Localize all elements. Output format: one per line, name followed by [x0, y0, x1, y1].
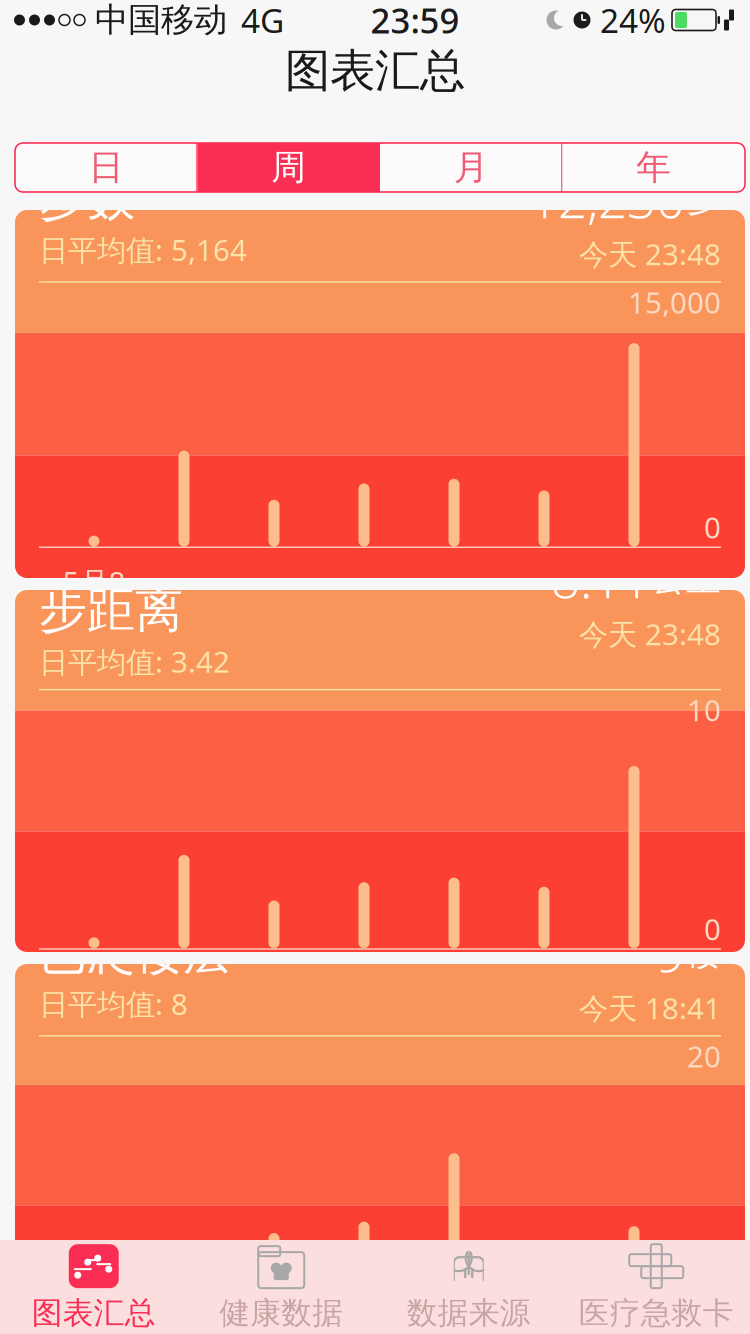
staticText: 12,230	[529, 165, 685, 232]
staticText: 今天 23:48	[579, 234, 721, 273]
staticText: 步行 + 跑步距离	[39, 517, 234, 640]
button[interactable]: 健康数据	[187, 1240, 375, 1334]
staticText: 周	[271, 146, 306, 189]
staticText: 9	[656, 919, 685, 986]
staticText: 月	[454, 146, 489, 189]
staticText: 日平均值: 3.42	[39, 642, 230, 681]
staticText: 23:59	[370, 0, 459, 43]
staticText: 0	[704, 909, 721, 948]
button[interactable]: 医疗急救卡	[562, 1240, 750, 1334]
staticText: 9	[175, 580, 192, 619]
staticText: 13	[527, 580, 561, 619]
staticText: 14	[617, 580, 651, 619]
staticText: 8.11	[551, 545, 650, 612]
staticText: 24%	[600, 0, 666, 42]
staticText: 步数	[39, 169, 135, 228]
staticText: 0	[704, 508, 721, 547]
staticText: 医疗急救卡	[579, 1294, 734, 1332]
staticText: 步	[686, 177, 721, 220]
staticText: 图表汇总	[32, 1294, 156, 1332]
button[interactable]: 周	[197, 143, 380, 192]
staticText: 图表汇总	[285, 43, 465, 99]
staticText: 15,000	[628, 283, 721, 322]
staticText: 5月8日	[62, 562, 125, 637]
staticText: 公里	[651, 557, 721, 600]
staticText: 20	[687, 1037, 721, 1076]
staticText: 日平均值: 8	[39, 984, 188, 1023]
staticText: 12	[437, 580, 471, 619]
staticText: 5月8日	[62, 964, 125, 1039]
button[interactable]: 数据来源	[375, 1240, 562, 1334]
button[interactable]: 月	[380, 143, 562, 192]
button[interactable]: 图表汇总	[0, 1240, 187, 1334]
staticText: 14	[617, 982, 651, 1021]
staticText: 今天 18:41	[579, 988, 721, 1027]
staticText: 10	[687, 690, 721, 729]
staticText: 9	[175, 982, 192, 1021]
staticText: 10	[257, 580, 291, 619]
staticText: 5月8日	[62, 1310, 125, 1334]
staticText: 健康数据	[219, 1294, 343, 1332]
button[interactable]: 日	[15, 143, 197, 192]
button[interactable]: 年	[562, 143, 745, 192]
staticText: 中国移动	[95, 0, 227, 40]
staticText: 日	[89, 146, 124, 189]
staticText: 年	[636, 146, 671, 189]
staticText: 11	[347, 580, 381, 619]
staticText: 楼	[686, 931, 721, 974]
staticText: 已爬楼层	[39, 923, 231, 982]
staticText: 数据来源	[407, 1294, 531, 1332]
staticText: 4G	[241, 0, 284, 42]
staticText: 今天 23:48	[579, 614, 721, 653]
staticText: 日平均值: 5,164	[39, 230, 247, 269]
